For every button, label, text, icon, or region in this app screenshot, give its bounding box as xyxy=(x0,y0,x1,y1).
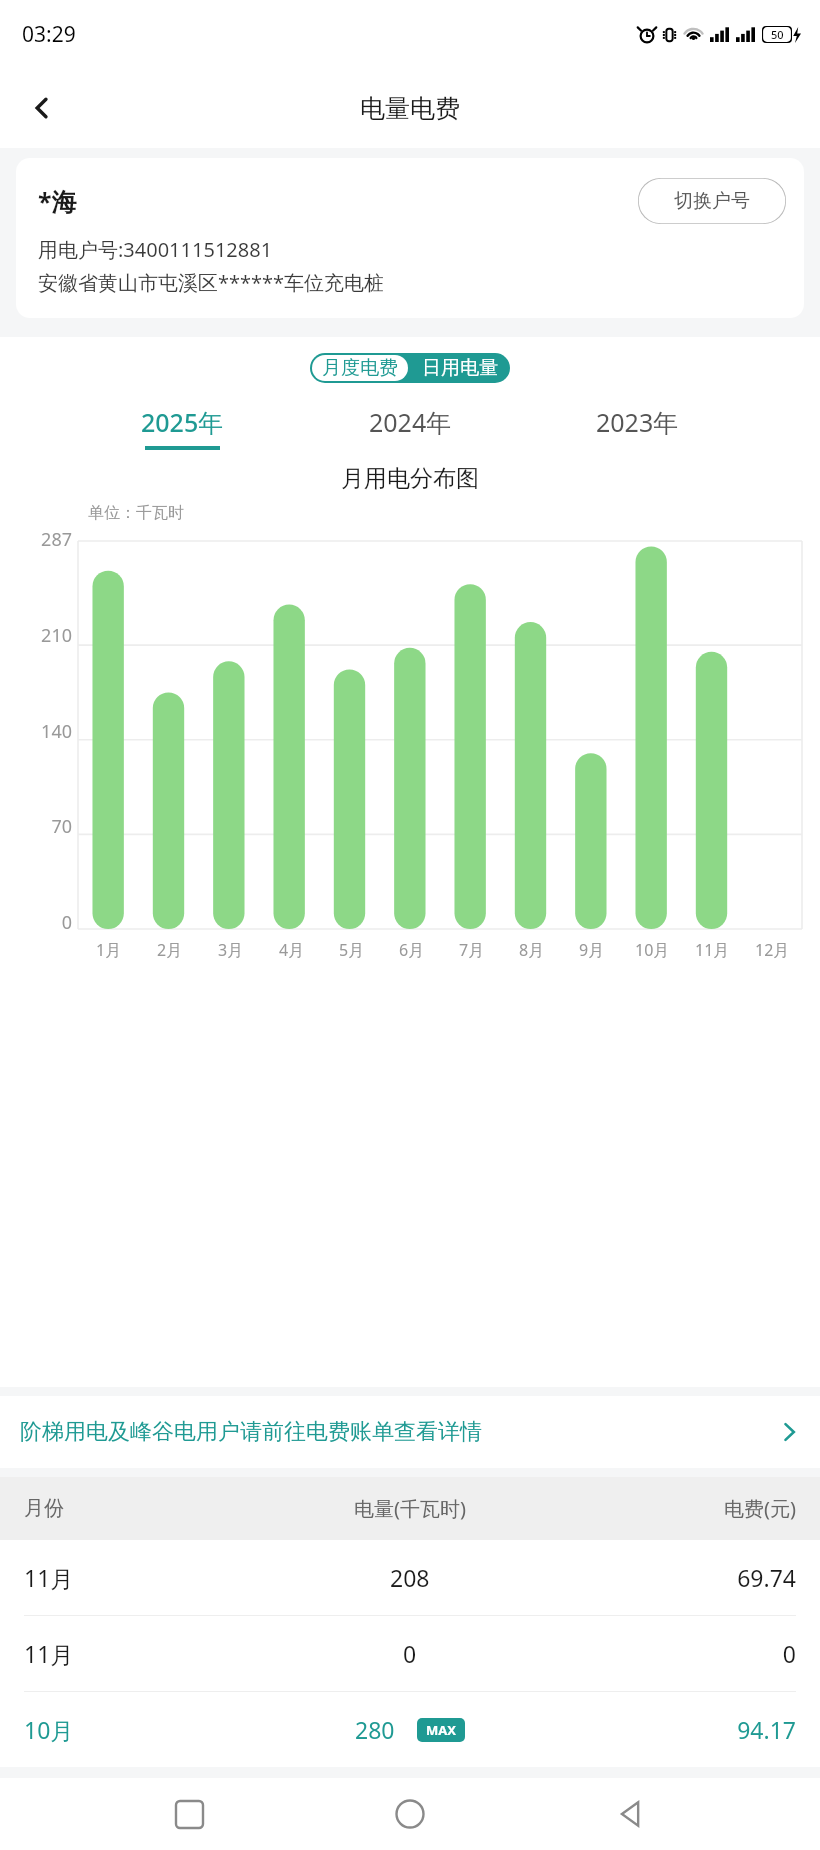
staticText: 月用电分布图 xyxy=(341,464,479,493)
staticText: 12月 xyxy=(755,939,790,961)
staticText: 2025年 xyxy=(141,405,224,439)
staticText: 140 xyxy=(41,719,72,744)
button[interactable]: Back xyxy=(16,82,68,134)
button[interactable]: 2024年 xyxy=(351,403,470,452)
staticText: 月度电费 xyxy=(322,356,398,380)
button[interactable]: *海 xyxy=(16,158,804,318)
staticText: 电量电费 xyxy=(360,93,460,124)
staticText: *海 xyxy=(38,184,77,218)
staticText: 单位：千瓦时 xyxy=(88,503,184,523)
staticText: 0 xyxy=(562,1638,796,1669)
staticText: 切换户号 xyxy=(674,189,750,213)
staticText: 03:29 xyxy=(22,20,76,49)
staticText: 阶梯用电及峰谷电用户请前往电费账单查看详情 xyxy=(20,1418,482,1446)
staticText: 5月 xyxy=(339,939,365,961)
staticText: 2023年 xyxy=(596,405,679,439)
button[interactable]: Home xyxy=(377,1781,443,1847)
staticText: 6月 xyxy=(399,939,425,961)
staticText: MAX xyxy=(426,1721,456,1739)
staticText: 3月 xyxy=(218,939,244,961)
staticText: 4月 xyxy=(279,939,305,961)
staticText: 电量(千瓦时) xyxy=(258,1495,562,1522)
button[interactable]: 月度电费 xyxy=(312,355,408,381)
button[interactable]: 阶梯用电及峰谷电用户请前往电费账单查看详情 xyxy=(0,1396,820,1468)
staticText: 0 xyxy=(403,1638,417,1669)
button[interactable]: 2025年 xyxy=(123,403,242,452)
staticText: 11月 xyxy=(24,1638,258,1669)
staticText: 2024年 xyxy=(369,405,452,439)
staticText: 69.74 xyxy=(562,1562,796,1593)
staticText: 11月 xyxy=(24,1562,258,1593)
staticText: 8月 xyxy=(519,939,545,961)
staticText: 210 xyxy=(41,623,72,648)
staticText: 11月 xyxy=(695,939,730,961)
button[interactable]: 切换户号 xyxy=(638,178,786,224)
staticText: 208 xyxy=(390,1562,430,1593)
staticText: 280 xyxy=(355,1714,395,1745)
staticText: 50 xyxy=(771,27,784,42)
staticText: 9月 xyxy=(579,939,605,961)
staticText: 94.17 xyxy=(562,1714,796,1745)
button[interactable]: Recents xyxy=(156,1781,222,1847)
staticText: 用电户号:3400111512881 xyxy=(38,236,273,263)
staticText: 电费(元) xyxy=(562,1495,796,1522)
button[interactable]: 10月 xyxy=(0,1692,820,1767)
staticText: 70 xyxy=(51,814,72,839)
staticText: 10月 xyxy=(24,1714,258,1745)
button[interactable]: 日用电量 xyxy=(410,353,510,383)
staticText: 安徽省黄山市屯溪区******车位充电桩 xyxy=(38,269,385,296)
button[interactable]: 11月 xyxy=(0,1616,820,1691)
staticText: 月份 xyxy=(24,1496,258,1521)
staticText: 日用电量 xyxy=(422,356,498,380)
button[interactable]: 2023年 xyxy=(578,403,697,452)
staticText: 2月 xyxy=(157,939,183,961)
button[interactable]: Back xyxy=(599,1781,665,1847)
staticText: 287 xyxy=(41,527,72,552)
staticText: 7月 xyxy=(459,939,485,961)
staticText: 0 xyxy=(61,910,72,935)
staticText: 1月 xyxy=(96,939,122,961)
staticText: 10月 xyxy=(635,939,670,961)
button[interactable]: 11月 xyxy=(0,1540,820,1615)
